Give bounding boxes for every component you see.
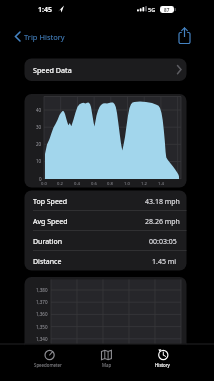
staticText: History (155, 362, 170, 368)
staticText: 5G (148, 6, 156, 13)
staticText: 1.0 (124, 181, 130, 187)
staticText: 1,360 (36, 311, 48, 317)
staticText: 1.2 (141, 181, 147, 187)
staticText: Top Speed (33, 197, 68, 207)
staticText: 00:03:05 (149, 237, 177, 247)
staticText: 1,380 (36, 287, 48, 293)
staticText: 87 (164, 7, 170, 13)
button[interactable] (175, 26, 195, 46)
staticText: 0 (39, 176, 42, 182)
staticText: 40 (36, 107, 42, 113)
button[interactable] (78, 344, 136, 374)
staticText: Avg Speed (33, 217, 68, 227)
staticText: 1:45 (38, 5, 52, 15)
staticText: 0.6 (91, 181, 97, 187)
staticText: 1,340 (36, 336, 48, 342)
staticText: 43.18 mph (145, 197, 180, 207)
staticText: 10 (36, 158, 42, 164)
staticText: 1,370 (36, 299, 48, 305)
staticText: 20 (36, 141, 42, 147)
staticText: 30 (36, 124, 42, 130)
button[interactable] (12, 28, 80, 46)
staticText: Duration (33, 237, 63, 247)
button[interactable] (24, 58, 186, 81)
staticText: 0.4 (74, 181, 80, 187)
staticText: Speed Data (33, 65, 72, 75)
staticText: 0.8 (107, 181, 113, 187)
staticText: 28.26 mph (145, 217, 180, 227)
button[interactable] (136, 344, 194, 374)
staticText: 1,350 (36, 324, 48, 330)
staticText: 0.2 (57, 181, 63, 187)
button[interactable] (20, 344, 78, 374)
staticText: Map (102, 362, 112, 368)
staticText: 1.4 (158, 181, 164, 187)
staticText: 1.45 mi (152, 257, 177, 267)
staticText: 0.0 (41, 181, 47, 187)
staticText: Speedometer (34, 362, 62, 368)
staticText: Trip History (24, 32, 65, 42)
staticText: Distance (33, 257, 62, 267)
